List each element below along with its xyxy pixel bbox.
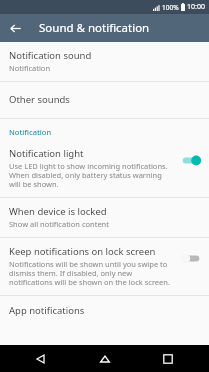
staticText: Other sounds [9, 93, 70, 106]
staticText: Sound & notification [39, 20, 150, 36]
staticText: Keep notifications on lock screen [9, 245, 156, 258]
button[interactable]: Recent apps [146, 345, 190, 372]
button[interactable]: Notification light [0, 140, 209, 197]
button[interactable]: Keep notifications on lock screen [0, 238, 209, 295]
staticText: App notifications [9, 304, 85, 317]
button[interactable]: Other sounds [0, 82, 209, 118]
button[interactable]: App notifications [0, 296, 209, 325]
staticText: Notification sound [9, 49, 92, 62]
staticText: Notification [9, 63, 51, 73]
staticText: Notification light [9, 147, 84, 160]
staticText: Notification [9, 127, 52, 137]
button[interactable]: Home [83, 345, 127, 372]
staticText: 10:00 [187, 2, 205, 12]
button[interactable]: When device is locked [0, 198, 209, 237]
staticText: Use LED light to show incoming notificat… [9, 161, 170, 190]
staticText: Show all notification content [9, 219, 109, 229]
staticText: Notifications will be shown until you sw… [9, 259, 170, 288]
button[interactable]: Back [19, 345, 63, 372]
button[interactable]: Switch on [178, 154, 204, 167]
staticText: When device is locked [9, 205, 107, 218]
button[interactable]: Switch off [178, 252, 204, 265]
staticText: 100% [162, 3, 179, 12]
button[interactable]: Navigate up [0, 14, 30, 42]
button[interactable]: Notification sound [0, 42, 209, 81]
